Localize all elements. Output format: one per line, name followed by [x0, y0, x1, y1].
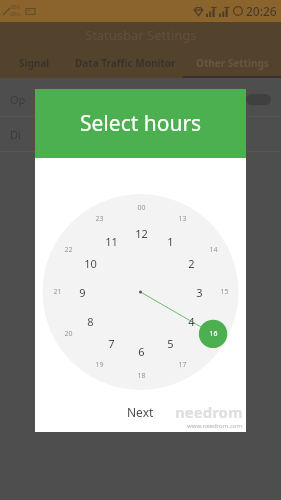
- staticText: 3: [196, 285, 203, 300]
- button[interactable]: 8: [79, 313, 101, 329]
- staticText: Signal: [19, 56, 50, 70]
- button[interactable]: Next: [35, 392, 246, 432]
- staticText: Data Traffic Monitor: [75, 56, 176, 70]
- button[interactable]: 23: [88, 212, 110, 226]
- staticText: 10: [84, 256, 97, 271]
- staticText: 17: [178, 360, 187, 370]
- staticText: 15: [220, 287, 229, 297]
- staticText: 19: [95, 360, 104, 370]
- button[interactable]: 6: [130, 343, 152, 359]
- button[interactable]: 7: [100, 335, 122, 351]
- staticText: 00: [137, 203, 146, 213]
- staticText: 6: [138, 344, 145, 359]
- staticText: 20:26: [246, 3, 277, 19]
- button[interactable]: 19: [88, 358, 110, 372]
- staticText: 4: [188, 314, 195, 329]
- staticText: Statusbar Settings: [85, 26, 197, 44]
- button[interactable]: Signal: [0, 48, 68, 78]
- button[interactable]: 22: [57, 243, 79, 257]
- staticText: needrom: [175, 402, 243, 422]
- staticText: 22: [64, 245, 73, 255]
- button[interactable]: Op: [0, 82, 281, 116]
- staticText: 23: [95, 214, 104, 224]
- staticText: 7: [108, 336, 115, 351]
- button[interactable]: 21: [46, 285, 68, 299]
- button[interactable]: 11: [100, 233, 122, 249]
- button[interactable]: 5: [159, 335, 181, 351]
- button[interactable]: Other Settings: [183, 48, 281, 78]
- button[interactable]: 3: [188, 284, 210, 300]
- staticText: 20: [64, 329, 73, 339]
- button[interactable]: 17: [171, 358, 193, 372]
- staticText: Op: [10, 92, 26, 107]
- button[interactable]: 9: [71, 284, 93, 300]
- staticText: 21: [53, 287, 62, 297]
- staticText: Next: [127, 404, 154, 420]
- button[interactable]: Di: [0, 117, 281, 151]
- staticText: Select hours: [80, 109, 202, 138]
- button[interactable]: 4: [180, 313, 202, 329]
- button[interactable]: 2: [180, 255, 202, 271]
- button[interactable]: 00: [130, 201, 152, 215]
- button[interactable]: 15: [213, 285, 235, 299]
- staticText: 13: [178, 214, 187, 224]
- button[interactable]: 18: [130, 369, 152, 383]
- button[interactable]: 16: [202, 327, 224, 341]
- staticText: 11: [105, 234, 118, 249]
- staticText: 0B/s: [10, 11, 21, 18]
- staticText: 16: [209, 329, 218, 339]
- staticText: 0B/s: [10, 4, 21, 11]
- staticText: www.needrom.com: [187, 422, 243, 430]
- button[interactable]: 1: [159, 233, 181, 249]
- staticText: 8: [87, 314, 94, 329]
- staticText: 14: [209, 245, 218, 255]
- button[interactable]: Data Traffic Monitor: [68, 48, 183, 78]
- staticText: Other Settings: [196, 56, 269, 70]
- button[interactable]: 12: [130, 225, 152, 241]
- button[interactable]: 20: [57, 327, 79, 341]
- staticText: 5: [167, 336, 174, 351]
- staticText: Di: [10, 127, 21, 142]
- staticText: 18: [137, 371, 146, 381]
- button[interactable]: 14: [202, 243, 224, 257]
- button[interactable]: 13: [171, 212, 193, 226]
- staticText: 12: [135, 226, 148, 241]
- staticText: 9: [79, 285, 86, 300]
- staticText: 2: [188, 256, 195, 271]
- button[interactable]: 10: [79, 255, 101, 271]
- staticText: 1: [167, 234, 174, 249]
